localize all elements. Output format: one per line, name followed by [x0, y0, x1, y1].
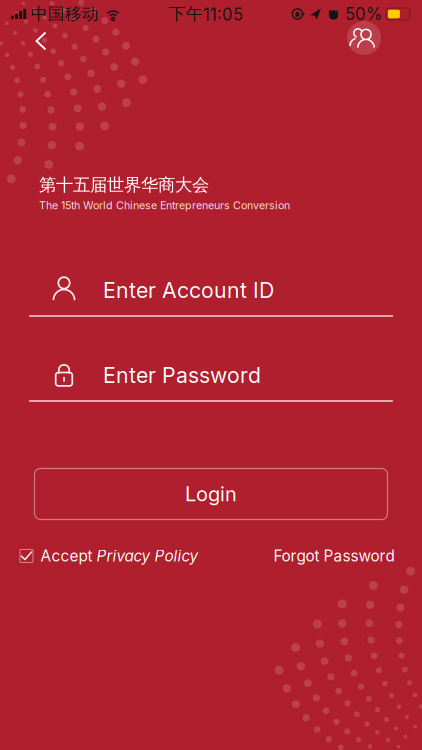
button[interactable]: Forgot Password — [273, 545, 394, 567]
button[interactable]: Back — [19, 19, 63, 63]
staticText: Privacy Policy — [96, 547, 198, 565]
staticText: 下午11:05 — [169, 3, 243, 24]
staticText: 中国移动 — [31, 3, 99, 24]
staticText: Forgot Password — [273, 547, 394, 565]
button[interactable]: Accept — [19, 545, 198, 567]
staticText: 50% — [345, 4, 382, 24]
button[interactable]: Login — [34, 468, 387, 519]
staticText: Login — [185, 482, 237, 506]
staticText: 第十五届世界华商大会 — [39, 174, 209, 196]
staticText: The 15th World Chinese Entrepreneurs Con… — [39, 199, 290, 212]
staticText: Enter Password — [103, 362, 261, 388]
staticText: Accept — [40, 547, 96, 565]
button[interactable]: Profile — [342, 16, 386, 60]
staticText: Enter Account ID — [103, 277, 274, 303]
